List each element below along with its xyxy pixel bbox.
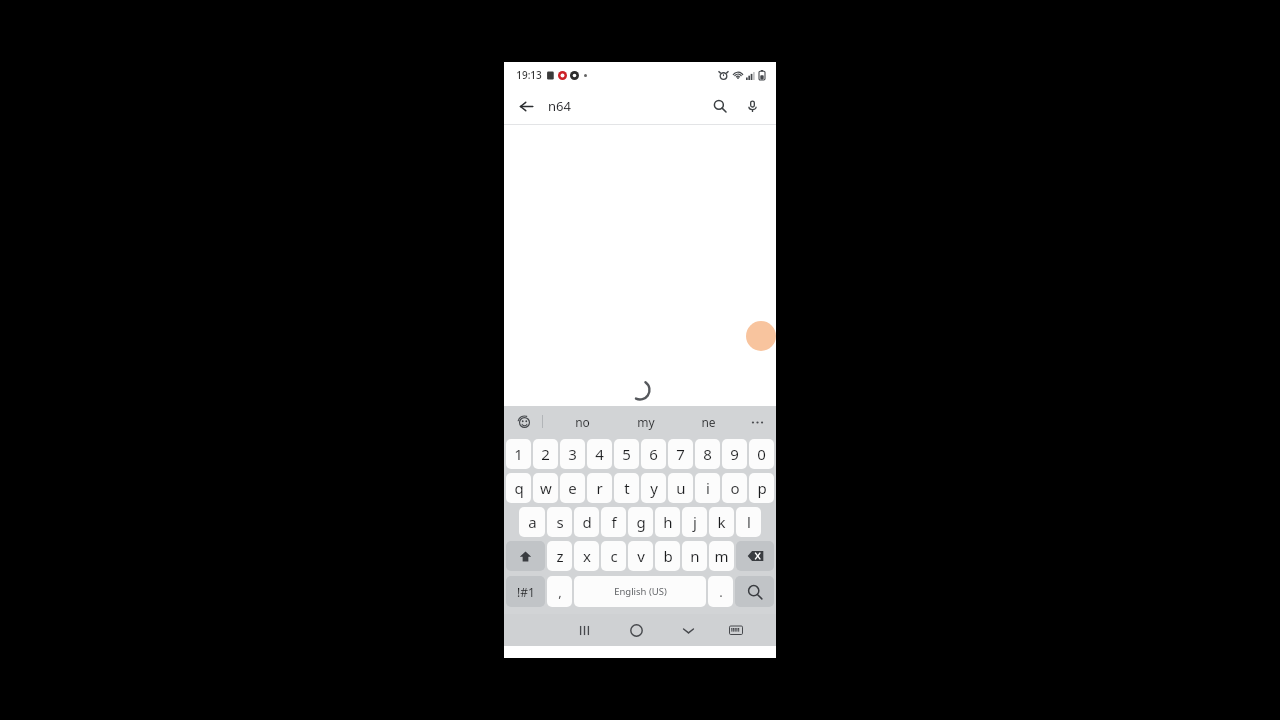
button[interactable]: g	[628, 507, 653, 537]
button[interactable]: f	[601, 507, 626, 537]
staticText: z	[556, 546, 564, 566]
button[interactable]: Recents	[558, 614, 610, 646]
staticText: p	[757, 478, 767, 498]
button[interactable]: r	[587, 473, 612, 503]
staticText: 3	[568, 444, 577, 464]
button[interactable]: 5	[614, 439, 639, 469]
button[interactable]: z	[547, 541, 572, 571]
button[interactable]: h	[655, 507, 680, 537]
button[interactable]: Shift	[506, 541, 545, 571]
staticText: ,	[558, 583, 562, 601]
staticText: !#1	[517, 584, 535, 600]
button[interactable]: Home	[610, 614, 662, 646]
button[interactable]: u	[668, 473, 693, 503]
staticText: no	[575, 414, 590, 430]
staticText: d	[582, 512, 592, 532]
staticText: k	[717, 512, 726, 532]
button[interactable]: Floating bubble	[746, 321, 776, 351]
button[interactable]: i	[695, 473, 720, 503]
staticText: j	[693, 512, 697, 532]
staticText: o	[730, 478, 740, 498]
button[interactable]: English (US)	[574, 576, 706, 607]
button[interactable]: 3	[560, 439, 585, 469]
staticText: 4	[595, 444, 604, 464]
staticText: 7	[676, 444, 685, 464]
button[interactable]: q	[506, 473, 531, 503]
button[interactable]: y	[641, 473, 666, 503]
button[interactable]: a	[519, 507, 545, 537]
staticText: q	[514, 478, 524, 498]
button[interactable]: t	[614, 473, 639, 503]
staticText: b	[663, 546, 673, 566]
button[interactable]: d	[574, 507, 599, 537]
button[interactable]: 4	[587, 439, 612, 469]
button[interactable]: 1	[506, 439, 531, 469]
button[interactable]: n	[682, 541, 707, 571]
button[interactable]: ,	[547, 576, 572, 607]
staticText: t	[624, 478, 630, 498]
button[interactable]: m	[709, 541, 734, 571]
staticText: c	[610, 546, 618, 566]
button[interactable]: Backspace	[736, 541, 774, 571]
button[interactable]: my	[614, 407, 677, 436]
button[interactable]: b	[655, 541, 680, 571]
button[interactable]: x	[574, 541, 599, 571]
staticText: w	[540, 478, 552, 498]
button[interactable]: p	[749, 473, 774, 503]
staticText: ne	[701, 414, 716, 430]
staticText: f	[611, 512, 617, 532]
button[interactable]: w	[533, 473, 558, 503]
button[interactable]: Hide keyboard	[662, 614, 714, 646]
button[interactable]: Voice search	[737, 91, 767, 121]
staticText: l	[747, 512, 751, 532]
staticText: 9	[730, 444, 739, 464]
button[interactable]: j	[682, 507, 707, 537]
staticText: x	[583, 546, 591, 566]
staticText: 8	[703, 444, 712, 464]
button[interactable]: n64	[548, 91, 684, 121]
button[interactable]: Switch keyboard	[714, 614, 758, 646]
button[interactable]: k	[709, 507, 734, 537]
staticText: 6	[649, 444, 658, 464]
button[interactable]: ne	[677, 407, 740, 436]
button[interactable]: 9	[722, 439, 747, 469]
staticText: g	[636, 512, 646, 532]
staticText: English (US)	[614, 585, 667, 598]
staticText: 19:13	[516, 68, 542, 82]
button[interactable]: no	[550, 407, 614, 436]
staticText: 2	[541, 444, 550, 464]
button[interactable]: Back	[511, 91, 541, 121]
button[interactable]: 6	[641, 439, 666, 469]
button[interactable]: 0	[749, 439, 774, 469]
button[interactable]: v	[628, 541, 653, 571]
staticText: v	[637, 546, 645, 566]
button[interactable]: l	[736, 507, 761, 537]
staticText: u	[676, 478, 686, 498]
staticText: s	[556, 512, 564, 532]
button[interactable]: More suggestions	[745, 410, 769, 434]
staticText: my	[637, 414, 655, 430]
button[interactable]: 8	[695, 439, 720, 469]
staticText: a	[528, 512, 537, 532]
button[interactable]: .	[708, 576, 733, 607]
button[interactable]: e	[560, 473, 585, 503]
staticText: n	[690, 546, 700, 566]
staticText: .	[719, 583, 723, 601]
staticText: e	[568, 478, 577, 498]
button[interactable]: !#1	[506, 576, 545, 607]
button[interactable]: c	[601, 541, 626, 571]
staticText: r	[596, 478, 603, 498]
staticText: m	[714, 546, 729, 566]
staticText: n64	[548, 97, 571, 115]
staticText: i	[706, 478, 710, 498]
button[interactable]: 2	[533, 439, 558, 469]
button[interactable]: o	[722, 473, 747, 503]
button[interactable]: Search	[735, 576, 774, 607]
button[interactable]: s	[547, 507, 572, 537]
button[interactable]: Stickers	[512, 410, 536, 434]
button[interactable]: 7	[668, 439, 693, 469]
staticText: 1	[514, 444, 523, 464]
staticText: 5	[622, 444, 631, 464]
button[interactable]: Search	[705, 91, 735, 121]
staticText: 0	[757, 444, 766, 464]
